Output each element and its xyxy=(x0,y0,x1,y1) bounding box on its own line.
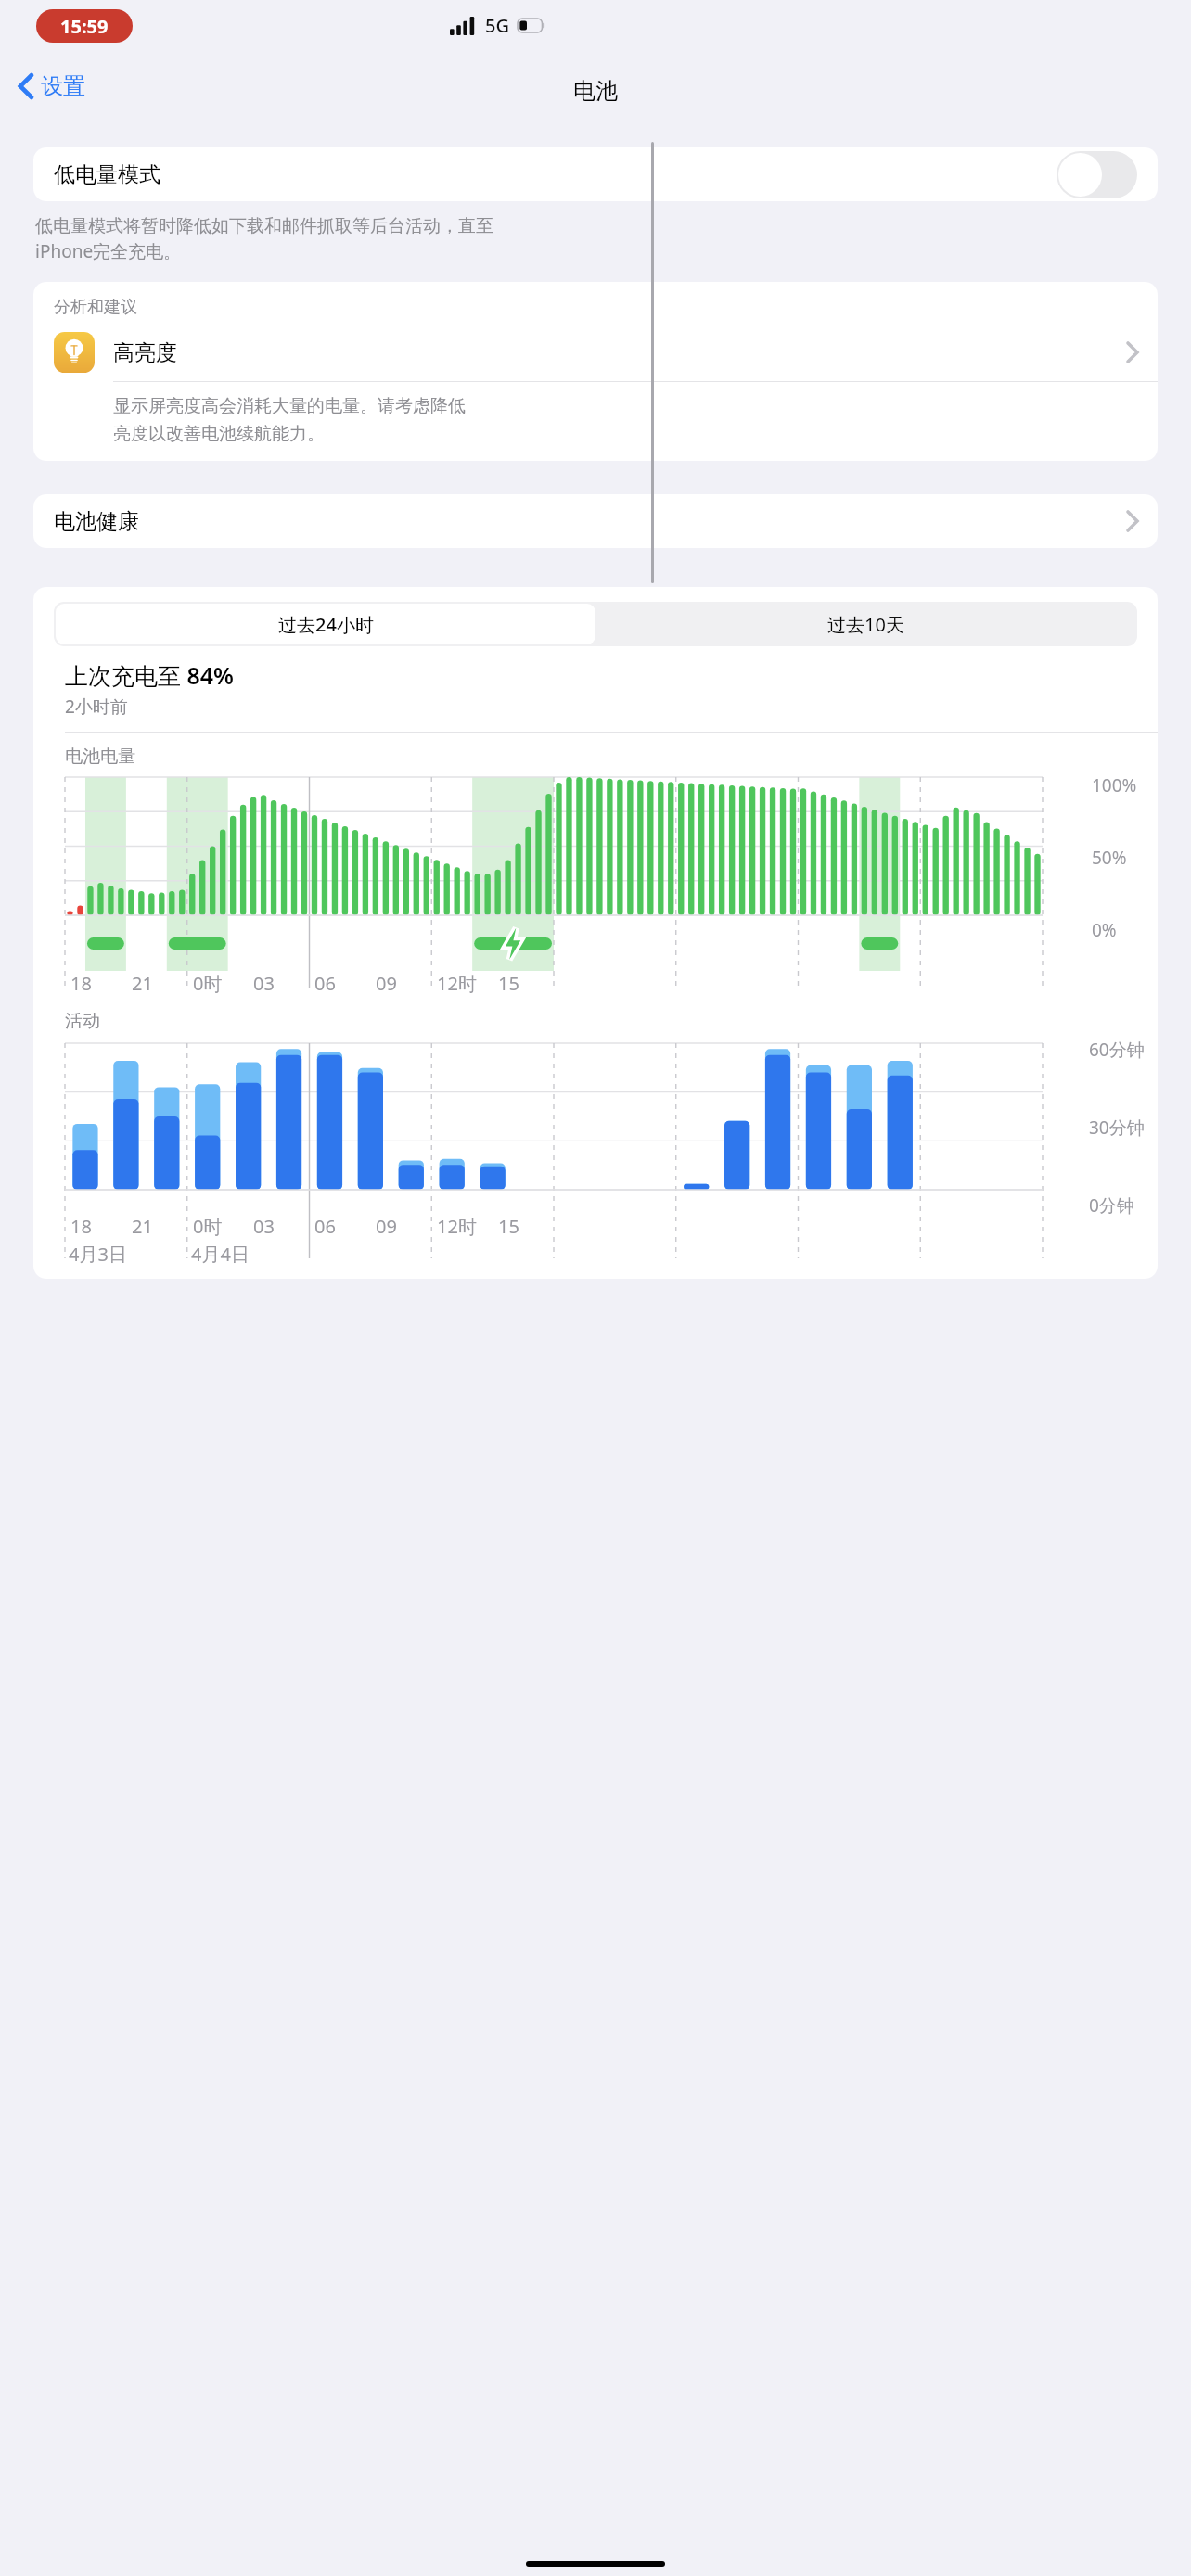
button[interactable]: 电池健康 xyxy=(33,494,1158,548)
staticText: 高亮度 xyxy=(113,339,177,366)
staticText: 电池 xyxy=(573,77,618,105)
staticText: 18 xyxy=(70,1214,92,1239)
staticText: 设置 xyxy=(41,72,85,100)
staticText: 显示屏亮度高会消耗大量的电量。请考虑降低 亮度以改善电池续航能力。 xyxy=(113,395,466,444)
button[interactable]: 低电量模式开关 xyxy=(1057,151,1137,198)
staticText: 30分钟 xyxy=(1089,1116,1145,1140)
staticText: 5G xyxy=(485,13,509,38)
staticText: 上次充电至 84% xyxy=(65,659,234,691)
staticText: 12时 xyxy=(437,971,477,996)
staticText: 2小时前 xyxy=(65,695,128,719)
staticText: 电池健康 xyxy=(54,508,139,535)
staticText: 低电量模式 xyxy=(54,161,160,188)
staticText: 0时 xyxy=(193,1214,223,1239)
staticText: 电池电量 xyxy=(65,746,135,768)
staticText: 60分钟 xyxy=(1089,1038,1145,1062)
staticText: 03 xyxy=(253,1214,275,1239)
staticText: 03 xyxy=(253,971,275,996)
staticText: 06 xyxy=(314,1214,336,1239)
staticText: 15:59 xyxy=(60,14,109,39)
staticText: 分析和建议 xyxy=(54,297,137,318)
button[interactable]: 过去24小时 xyxy=(56,604,595,644)
staticText: 4月4日 xyxy=(191,1242,250,1267)
staticText: 4月3日 xyxy=(69,1242,127,1267)
staticText: 低电量模式将暂时降低如下载和邮件抓取等后台活动，直至 iPhone完全充电。 xyxy=(35,215,493,263)
staticText: 过去10天 xyxy=(827,612,904,637)
staticText: 0分钟 xyxy=(1089,1193,1134,1218)
staticText: 21 xyxy=(132,1214,153,1239)
staticText: 12时 xyxy=(437,1214,477,1239)
staticText: 18 xyxy=(70,971,92,996)
staticText: 15 xyxy=(498,1214,519,1239)
staticText: 06 xyxy=(314,971,336,996)
staticText: 过去24小时 xyxy=(278,612,374,637)
button[interactable]: 过去10天 xyxy=(595,604,1135,644)
staticText: 100% xyxy=(1092,773,1137,797)
staticText: 15 xyxy=(498,971,519,996)
button[interactable]: 高亮度 xyxy=(33,324,1158,381)
staticText: 09 xyxy=(376,1214,397,1239)
staticText: 0% xyxy=(1092,918,1117,942)
staticText: 活动 xyxy=(65,1010,100,1032)
button[interactable]: 设置 xyxy=(11,69,93,104)
staticText: 50% xyxy=(1092,846,1127,870)
staticText: 0时 xyxy=(193,971,223,996)
button[interactable]: 低电量模式 xyxy=(33,147,1158,201)
staticText: 21 xyxy=(132,971,153,996)
staticText: 09 xyxy=(376,971,397,996)
